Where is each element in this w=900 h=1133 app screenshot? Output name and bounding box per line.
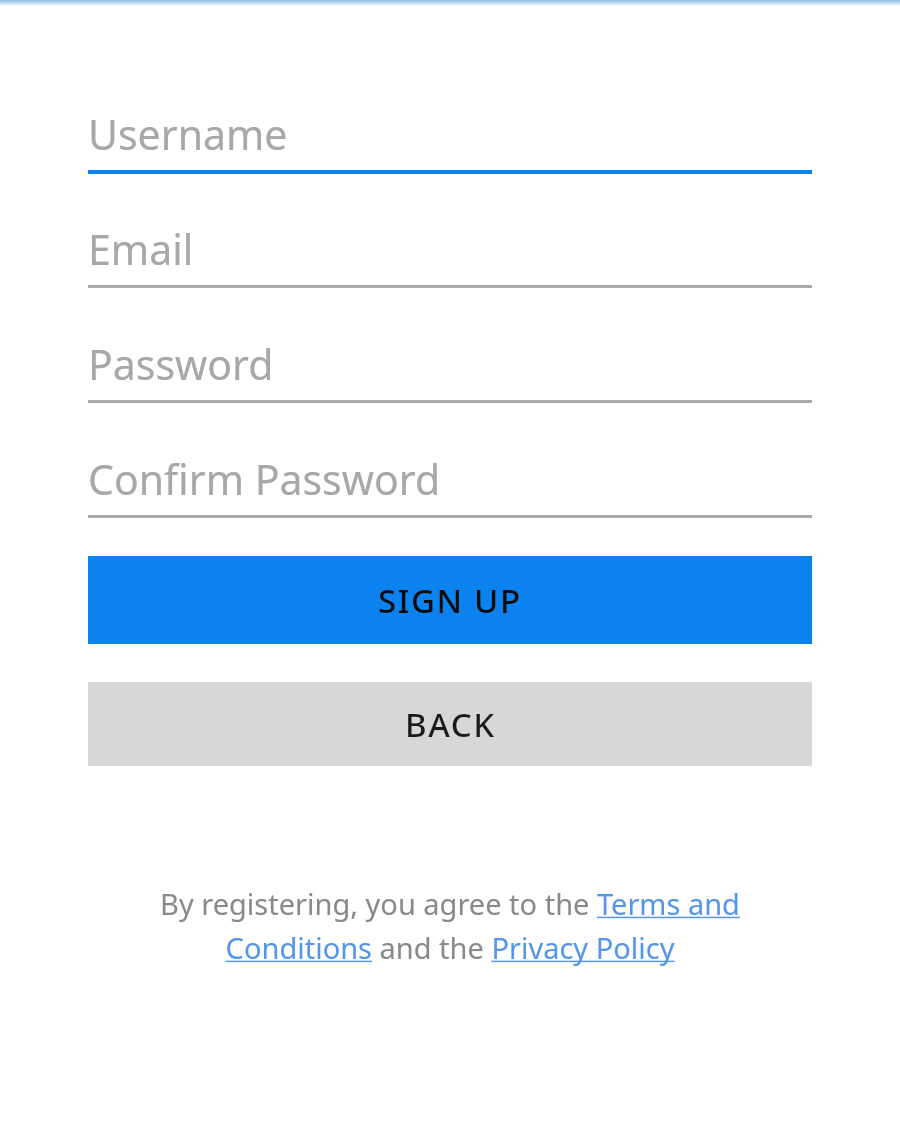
staticText: SIGN UP [378,578,522,623]
staticText: By registering, you agree to the Terms a… [102,884,798,967]
staticText: BACK [405,702,496,747]
button[interactable]: Confirm Password [88,449,812,518]
staticText: Email [88,221,194,277]
staticText: Username [88,106,288,162]
button[interactable]: SIGN UP [88,556,812,644]
staticText: Password [88,336,274,392]
staticText: Confirm Password [88,451,441,507]
button[interactable]: Terms and Conditions and Privacy Policy [102,884,798,967]
button[interactable]: Email [88,219,812,288]
button[interactable]: Username [88,104,812,174]
button[interactable]: BACK [88,682,812,766]
button[interactable]: Password [88,334,812,403]
